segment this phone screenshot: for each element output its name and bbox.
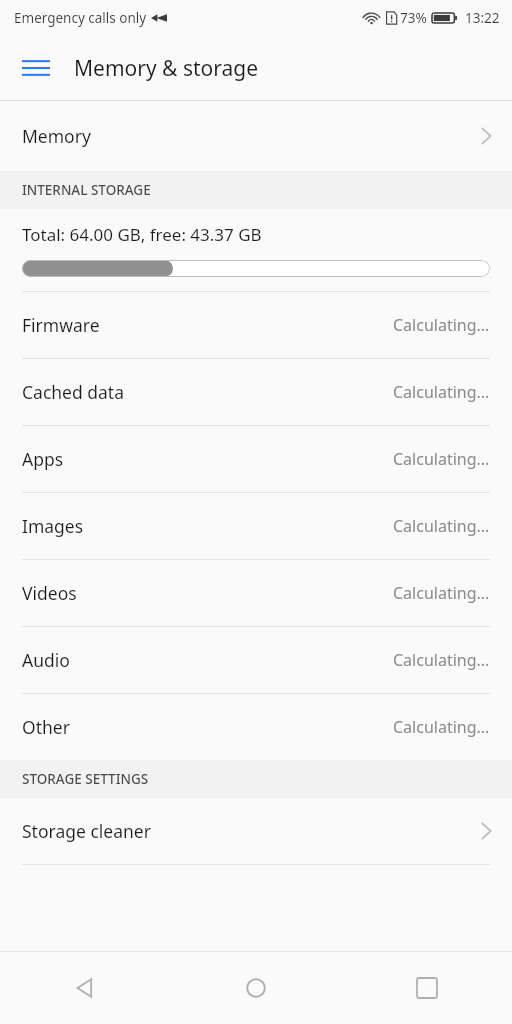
staticText: Emergency calls only <box>14 9 147 27</box>
button[interactable]: Cached data <box>0 359 512 425</box>
button[interactable]: Back <box>0 952 170 1024</box>
button[interactable]: Images <box>0 493 512 559</box>
staticText: Firmware <box>22 313 100 337</box>
button[interactable]: Memory <box>0 101 512 171</box>
staticText: INTERNAL STORAGE <box>22 181 151 199</box>
staticText: Videos <box>22 581 77 605</box>
staticText: Memory <box>22 124 91 148</box>
staticText: Calculating... <box>393 582 490 604</box>
staticText: Calculating... <box>393 515 490 537</box>
staticText: Apps <box>22 447 64 471</box>
staticText: 73% <box>400 9 427 27</box>
staticText: Images <box>22 514 84 538</box>
staticText: STORAGE SETTINGS <box>22 770 149 788</box>
button[interactable]: Home <box>170 952 341 1024</box>
staticText: Total: 64.00 GB, free: 43.37 GB <box>22 223 262 246</box>
button[interactable]: Storage cleaner <box>0 798 512 864</box>
button[interactable]: Audio <box>0 627 512 693</box>
button[interactable]: Videos <box>0 560 512 626</box>
staticText: Calculating... <box>393 716 490 738</box>
staticText: Calculating... <box>393 314 490 336</box>
staticText: Memory & storage <box>74 54 259 83</box>
staticText: 13:22 <box>465 9 500 27</box>
button[interactable]: Other <box>0 694 512 760</box>
staticText: Calculating... <box>393 649 490 671</box>
staticText: Other <box>22 715 70 739</box>
staticText: Calculating... <box>393 448 490 470</box>
staticText: Cached data <box>22 380 124 404</box>
button[interactable]: Recent apps <box>341 952 512 1024</box>
staticText: Audio <box>22 648 70 672</box>
button[interactable]: Firmware <box>0 292 512 358</box>
staticText: Storage cleaner <box>22 819 151 843</box>
staticText: Calculating... <box>393 381 490 403</box>
button[interactable]: Open navigation menu <box>12 44 60 92</box>
button[interactable]: Apps <box>0 426 512 492</box>
